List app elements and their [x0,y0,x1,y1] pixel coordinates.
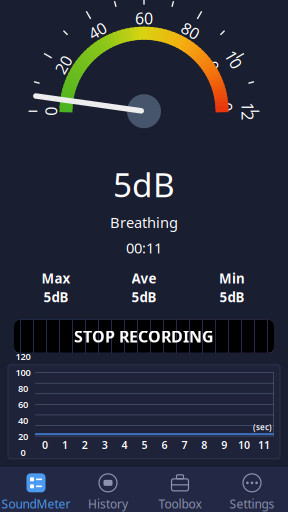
staticText: 4 [122,438,128,452]
staticText: 5dB [131,288,156,306]
staticText: 20 [135,8,153,29]
staticText: 10 [238,438,250,452]
staticText: 2 [82,438,88,452]
staticText: 9 [221,438,227,452]
staticText: Min [219,269,245,287]
staticText: 00:11 [126,238,162,257]
staticText: (sec) [253,422,272,432]
staticText: 40 [18,414,28,427]
staticText: 6 [161,438,167,452]
staticText: 11 [258,438,270,452]
button[interactable]: Toolbox [144,467,216,512]
staticText: 60 [18,398,28,411]
staticText: Max [41,269,70,287]
staticText: 100 [135,0,153,39]
staticText: 0 [42,438,48,452]
staticText: 80 [135,8,153,29]
staticText: 100 [15,366,30,379]
staticText: Toolbox [158,496,201,512]
staticText: 60 [135,8,153,29]
button[interactable]: History [72,467,144,512]
staticText: Settings [229,496,274,512]
staticText: 7 [181,438,187,452]
staticText: 5dB [219,288,244,306]
staticText: 0 [20,446,25,459]
button[interactable]: STOP RECORDING [14,320,274,353]
button[interactable]: Settings [216,467,288,512]
staticText: STOP RECORDING [74,326,214,347]
staticText: 5 [141,438,147,452]
staticText: 20 [18,430,28,443]
staticText: 3 [102,438,108,452]
staticText: History [88,496,128,512]
staticText: 0 [139,8,148,29]
staticText: 80 [18,382,28,395]
staticText: 5dB [43,288,68,306]
staticText: 8 [201,438,207,452]
staticText: Ave [131,269,156,287]
button[interactable]: SoundMeter [0,467,72,512]
staticText: 5dB [113,162,175,206]
staticText: Breathing [110,212,178,232]
staticText: 1 [62,438,68,452]
staticText: 120 [15,350,30,363]
staticText: 120 [135,0,153,39]
staticText: 40 [135,8,153,29]
staticText: SoundMeter [1,496,70,512]
